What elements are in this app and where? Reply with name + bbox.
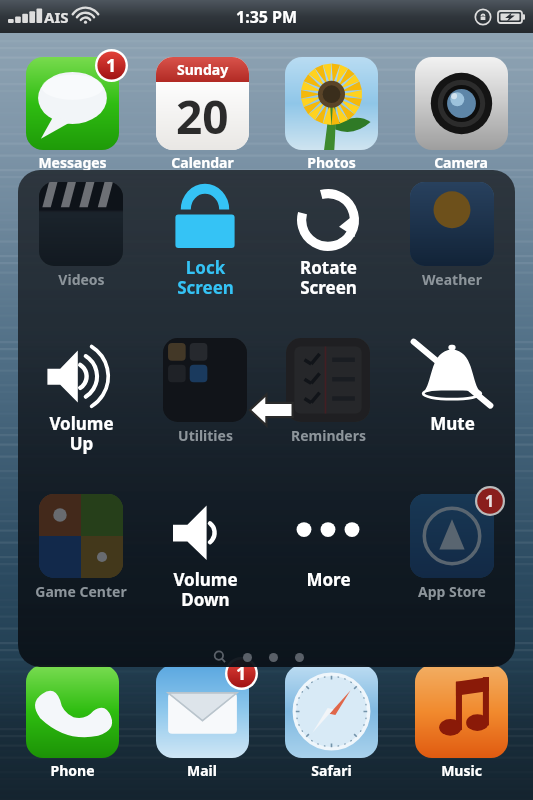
staticText: Weather	[422, 270, 482, 289]
button[interactable]: Rotate Screen	[268, 182, 388, 330]
staticText: Mail	[187, 761, 217, 780]
staticText: AIS	[44, 7, 69, 27]
button[interactable]: 1	[14, 57, 130, 172]
other: Lock Screen	[165, 184, 245, 264]
staticText: 1	[106, 53, 117, 78]
staticText: 1	[236, 661, 247, 686]
staticText: Game Center	[35, 582, 127, 601]
other: Volume Up	[41, 340, 121, 420]
other: Back	[248, 392, 294, 428]
staticText: Reminders	[291, 426, 366, 445]
button[interactable]: Safari	[273, 665, 389, 780]
button[interactable]: Music	[403, 665, 519, 780]
button[interactable]: Volume Up	[21, 338, 141, 486]
staticText: More	[306, 568, 351, 591]
staticText: Messages	[38, 153, 107, 172]
button[interactable]: Utilities	[145, 338, 265, 486]
other: Mute	[412, 340, 492, 420]
staticText: App Store	[418, 582, 486, 601]
button[interactable]: 1	[144, 665, 260, 780]
other: More	[288, 496, 368, 576]
staticText: Phone	[50, 761, 95, 780]
staticText: Camera	[434, 153, 488, 172]
button[interactable]: Photos	[273, 57, 389, 172]
staticText: Lock Screen	[177, 256, 234, 299]
button[interactable]: Videos	[21, 182, 141, 330]
other: Volume Down	[165, 496, 245, 576]
button[interactable]: Mute	[392, 338, 512, 486]
button[interactable]: Lock Screen	[145, 182, 265, 330]
staticText: Music	[441, 761, 482, 780]
staticText: Calendar	[171, 153, 234, 172]
button[interactable]: Sunday	[144, 57, 260, 172]
staticText: Safari	[311, 761, 352, 780]
staticText: Photos	[307, 153, 356, 172]
button[interactable]: More	[268, 494, 388, 642]
button[interactable]: Volume Down	[145, 494, 265, 642]
staticText: Volume Up	[49, 412, 114, 455]
other: Rotate Screen	[288, 184, 368, 264]
button[interactable]: Reminders	[268, 338, 388, 486]
staticText: Rotate Screen	[300, 256, 357, 299]
staticText: Sunday	[177, 60, 229, 79]
staticText: 1	[485, 490, 495, 512]
button[interactable]: Game Center	[21, 494, 141, 642]
staticText: 20	[176, 85, 229, 148]
staticText: Mute	[430, 412, 475, 435]
button[interactable]: Weather	[392, 182, 512, 330]
staticText: Utilities	[178, 426, 233, 445]
button[interactable]: Camera	[403, 57, 519, 172]
button[interactable]: 1	[392, 494, 512, 642]
staticText: Videos	[58, 270, 105, 289]
staticText: Volume Down	[173, 568, 238, 611]
staticText: 1:35 PM	[236, 6, 298, 28]
button[interactable]: Phone	[14, 665, 130, 780]
